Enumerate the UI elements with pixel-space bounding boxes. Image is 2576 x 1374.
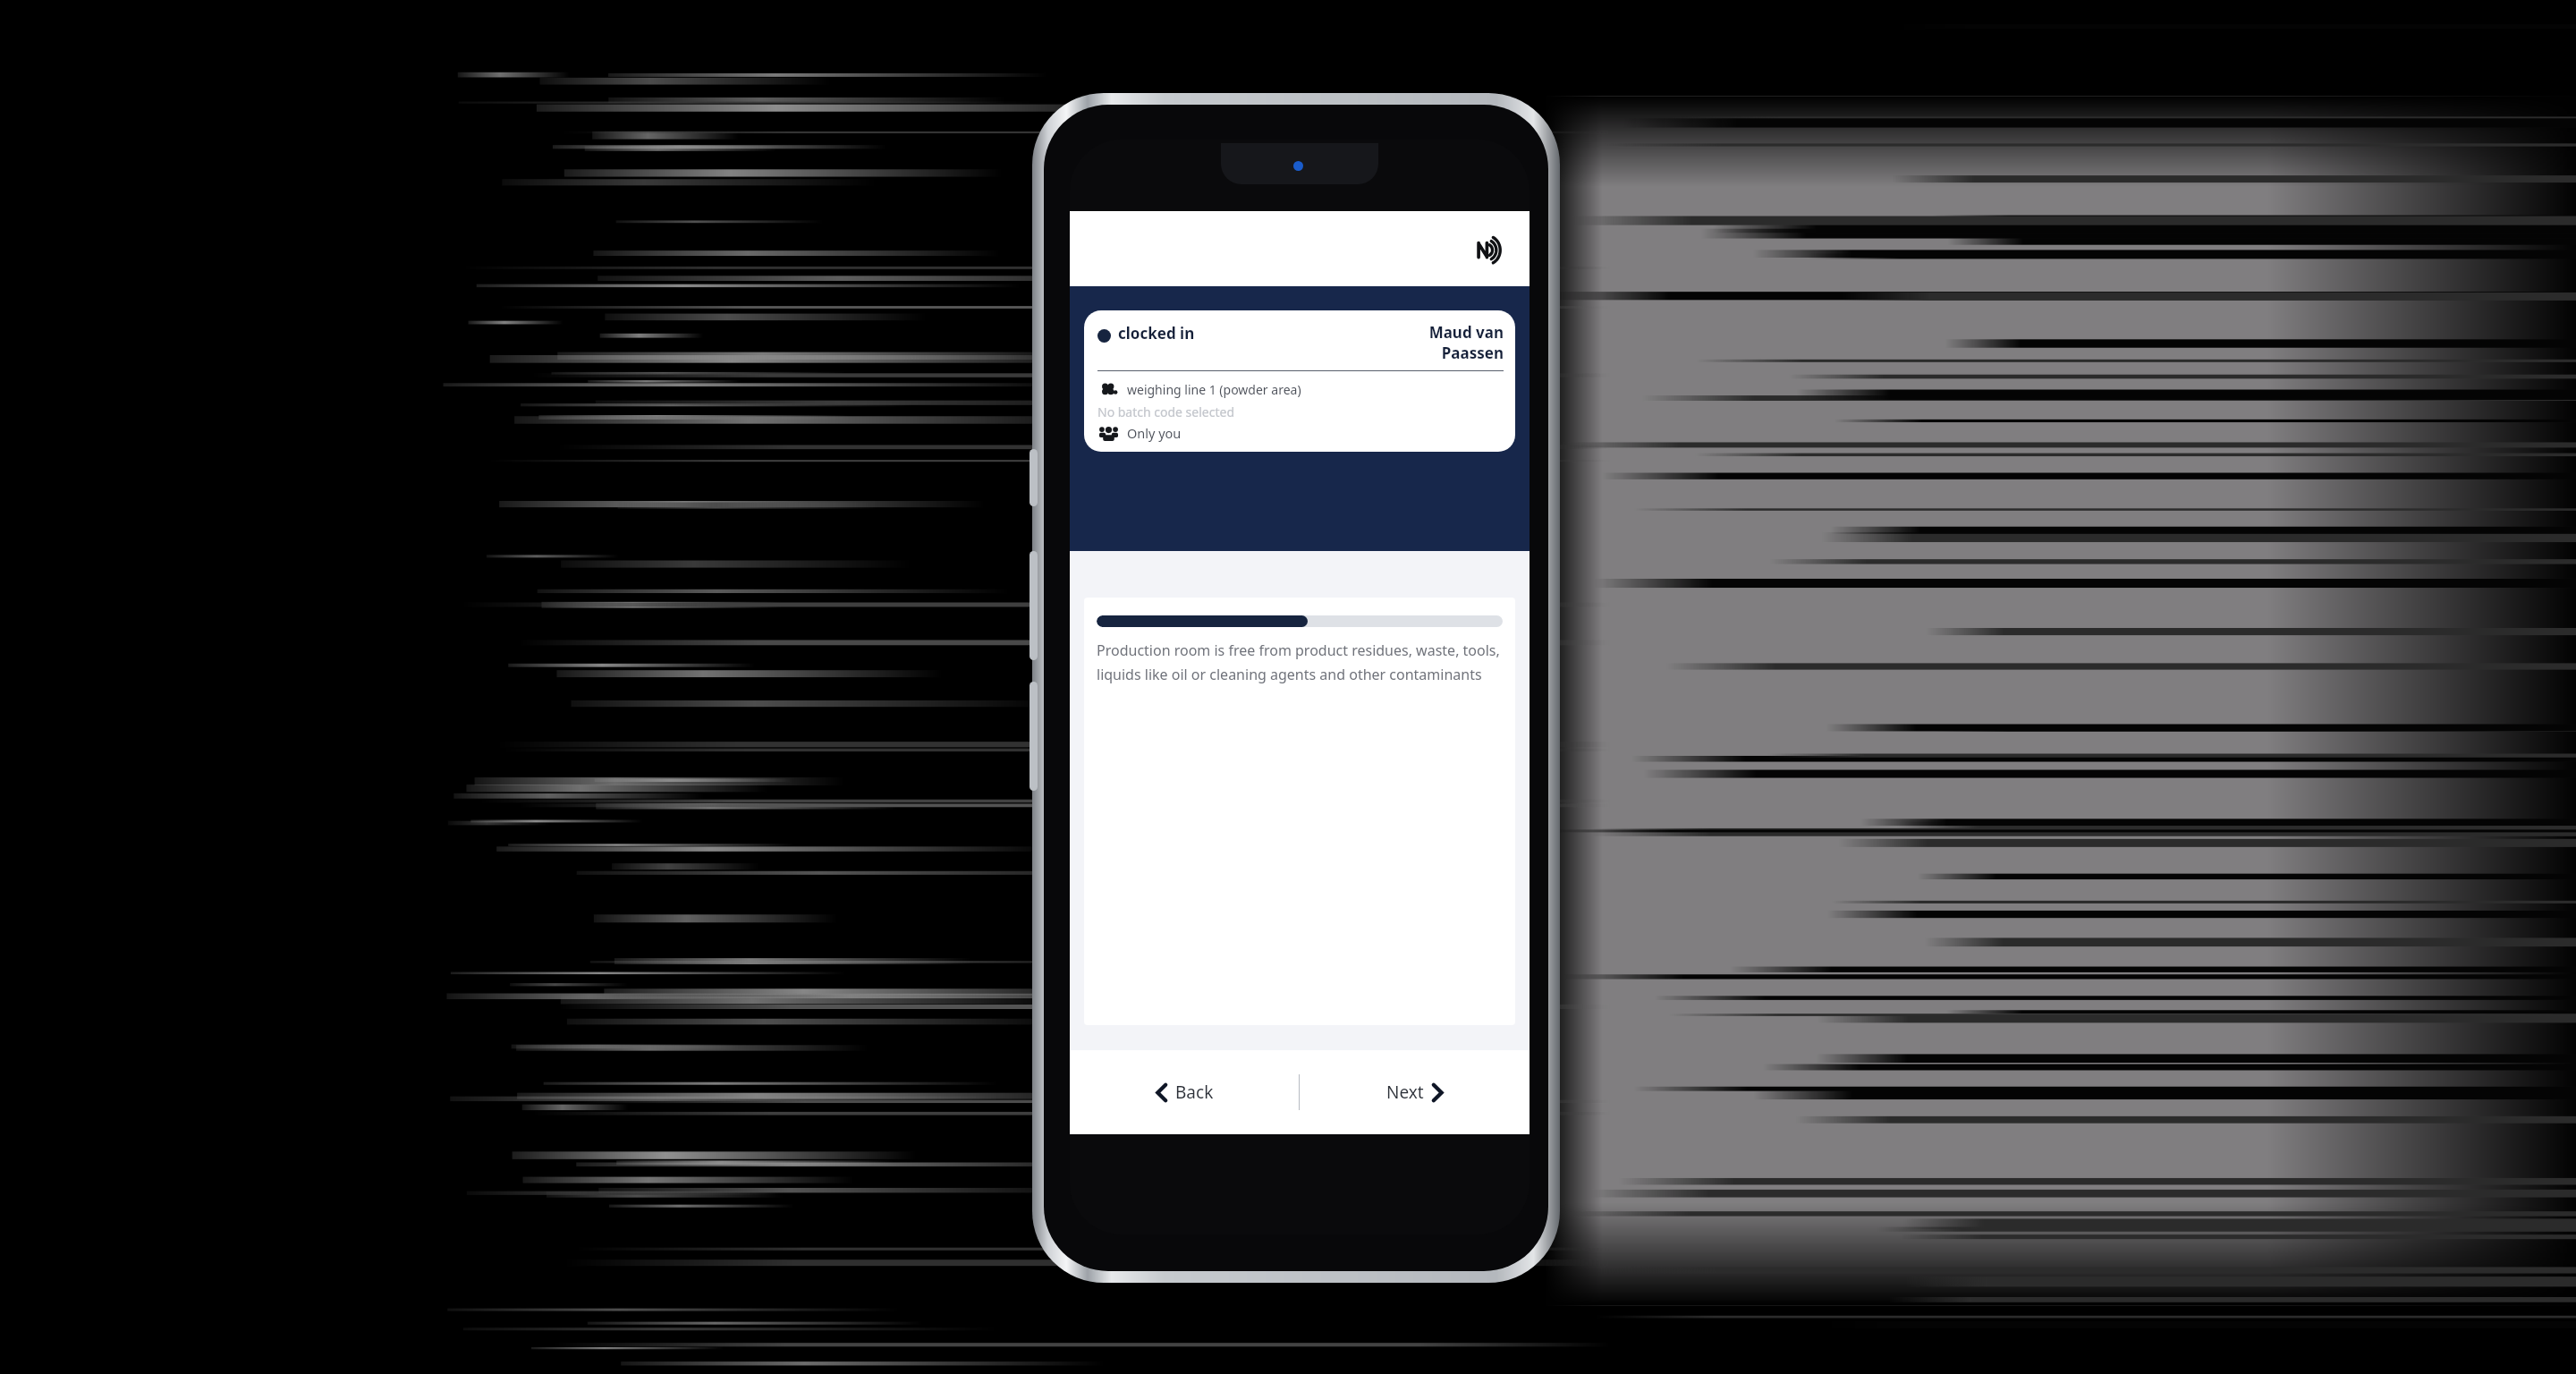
button[interactable]: Next (1300, 1050, 1529, 1134)
staticText: Back (1175, 1081, 1214, 1104)
staticText: Next (1386, 1081, 1424, 1104)
staticText: No batch code selected (1097, 403, 1235, 420)
button[interactable]: Back (1070, 1050, 1299, 1134)
staticText: weighing line 1 (powder area) (1127, 381, 1301, 398)
staticText: Production room is free from product res… (1097, 640, 1503, 684)
button[interactable]: NFC (1472, 227, 1515, 270)
staticText: Only you (1127, 424, 1182, 442)
staticText: clocked in (1118, 323, 1195, 343)
button[interactable]: clocked in (1084, 310, 1515, 452)
staticText: Maud van Paassen (1428, 322, 1504, 363)
